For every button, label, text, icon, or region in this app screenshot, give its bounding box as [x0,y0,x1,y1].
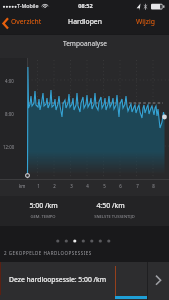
staticText: km [19,183,26,189]
staticText: 8:00 [5,111,14,117]
staticText: 2 GEKOPPELDE HARDLOOPSESSIES [4,250,92,256]
staticText: 4 [86,183,89,189]
staticText: 4:50 /km [96,201,125,210]
staticText: Deze hardloopsessie: 5:00 /km [9,275,107,284]
staticText: 08:52 [78,2,93,10]
staticText: Hardlopen [68,17,102,26]
staticText: 6 [119,183,122,189]
staticText: T-Mobile [17,2,39,9]
staticText: 7 [136,183,139,189]
staticText: 2 [53,183,56,189]
staticText: GEM. TEMPO [30,214,56,220]
button[interactable] [0,262,169,300]
button[interactable]: Wijzig [130,13,169,34]
staticText: Tempoanalyse [63,39,107,48]
staticText: 5 [103,183,106,189]
staticText: 3 [70,183,73,189]
staticText: 8 [152,183,155,189]
staticText: 12:00 [3,144,15,150]
staticText: Wijzig [136,17,155,26]
staticText: Overzicht [11,17,42,26]
button[interactable] [0,13,90,34]
staticText: 5:00 /km [29,201,58,210]
staticText: 1 [37,183,40,189]
staticText: 4:00 [5,78,14,84]
staticText: SNELSTE TUSSENTIJD [94,214,135,220]
